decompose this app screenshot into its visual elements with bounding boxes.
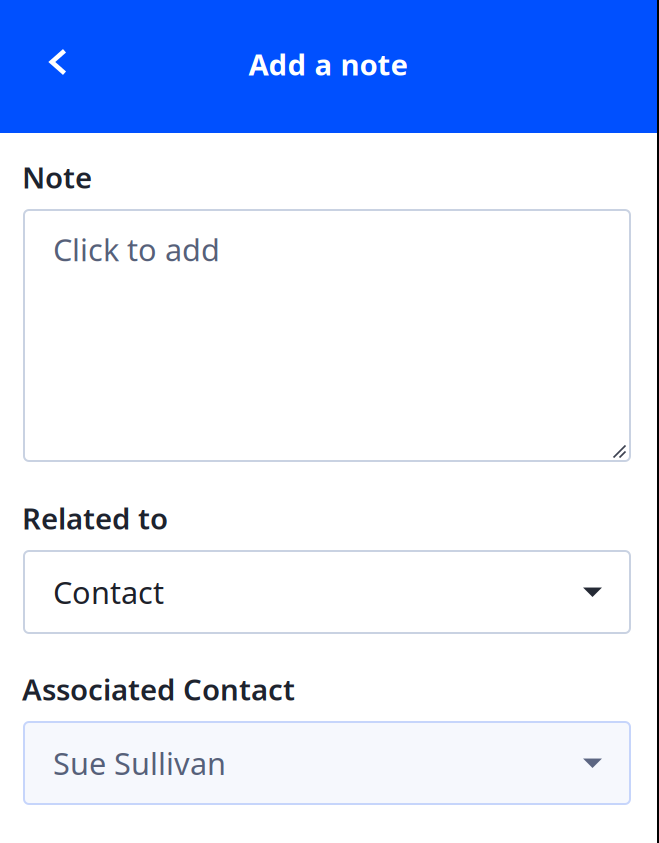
staticText: Sue Sullivan	[53, 743, 226, 783]
staticText: Associated Contact	[22, 669, 295, 708]
staticText: Add a note	[248, 44, 408, 83]
button[interactable]: Sue Sullivan	[24, 722, 630, 804]
staticText: Note	[22, 157, 92, 196]
button[interactable]: Back	[30, 34, 86, 90]
button[interactable]: Contact	[24, 551, 630, 633]
staticText: Related to	[22, 498, 168, 537]
staticText: Click to add	[53, 229, 220, 270]
button[interactable]: Click to add	[24, 210, 630, 461]
staticText: Contact	[53, 572, 164, 612]
